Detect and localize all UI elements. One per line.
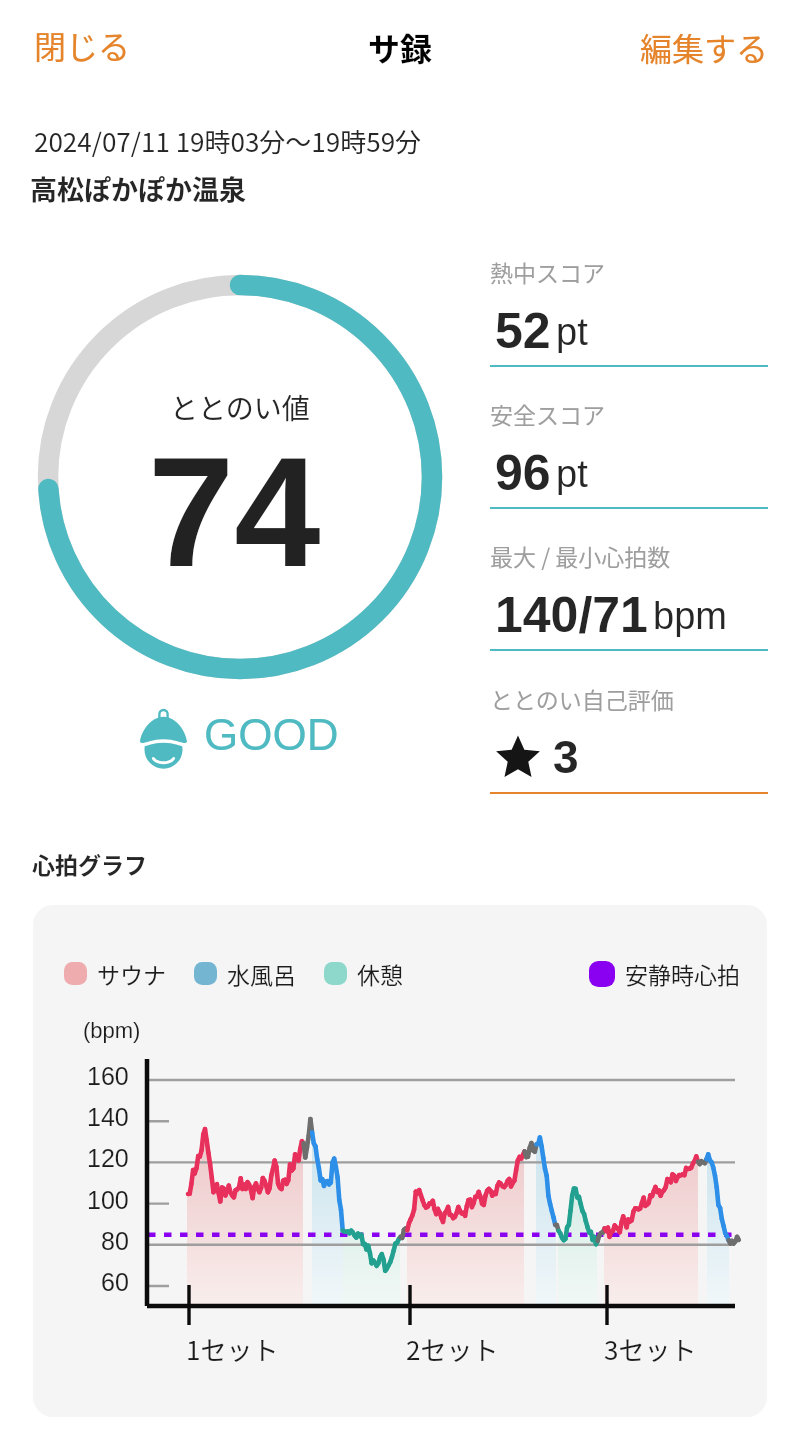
staticText: 60 [101,1268,129,1296]
staticText: 3セット [604,1330,697,1368]
staticText: 140 [87,1103,129,1131]
staticText: サウナ [97,957,166,990]
staticText: 120 [87,1144,129,1172]
button[interactable]: 閉じる [12,8,153,82]
staticText: GOOD [204,710,339,759]
staticText: サ録 [368,24,433,70]
staticText: 心拍グラフ [32,847,147,880]
staticText: 74 [148,426,321,599]
staticText: 52 [495,303,551,359]
staticText: 80 [101,1227,129,1255]
staticText: pt [556,311,588,353]
staticText: 安全スコア [490,397,605,430]
staticText: 最大 / 最小心拍数 [490,539,671,572]
staticText: 2セット [406,1330,499,1368]
staticText: 高松ぽかぽか温泉 [30,169,246,208]
staticText: ととのい自己評価 [490,682,674,715]
staticText: 3 [553,731,579,782]
staticText: 96 [495,445,551,501]
staticText: 編集する [640,24,769,70]
staticText: 安静時心拍 [625,957,740,990]
staticText: 2024/07/11 19時03分〜19時59分 [34,122,422,160]
other: Sauna condition good [140,710,187,767]
staticText: 水風呂 [227,957,296,990]
staticText: bpm [653,595,727,637]
staticText: pt [556,453,588,495]
staticText: 160 [87,1062,129,1090]
staticText: 休憩 [357,957,403,990]
staticText: ととのい値 [170,387,310,428]
staticText: 100 [87,1186,129,1214]
button[interactable]: ととのい自己評価 [490,677,768,807]
staticText: 閉じる [34,22,131,68]
staticText: 140/71 [495,587,648,643]
staticText: 1セット [186,1330,279,1368]
staticText: 熱中スコア [490,255,605,288]
button[interactable]: 編集する [618,10,791,84]
staticText: (bpm) [83,1018,141,1043]
